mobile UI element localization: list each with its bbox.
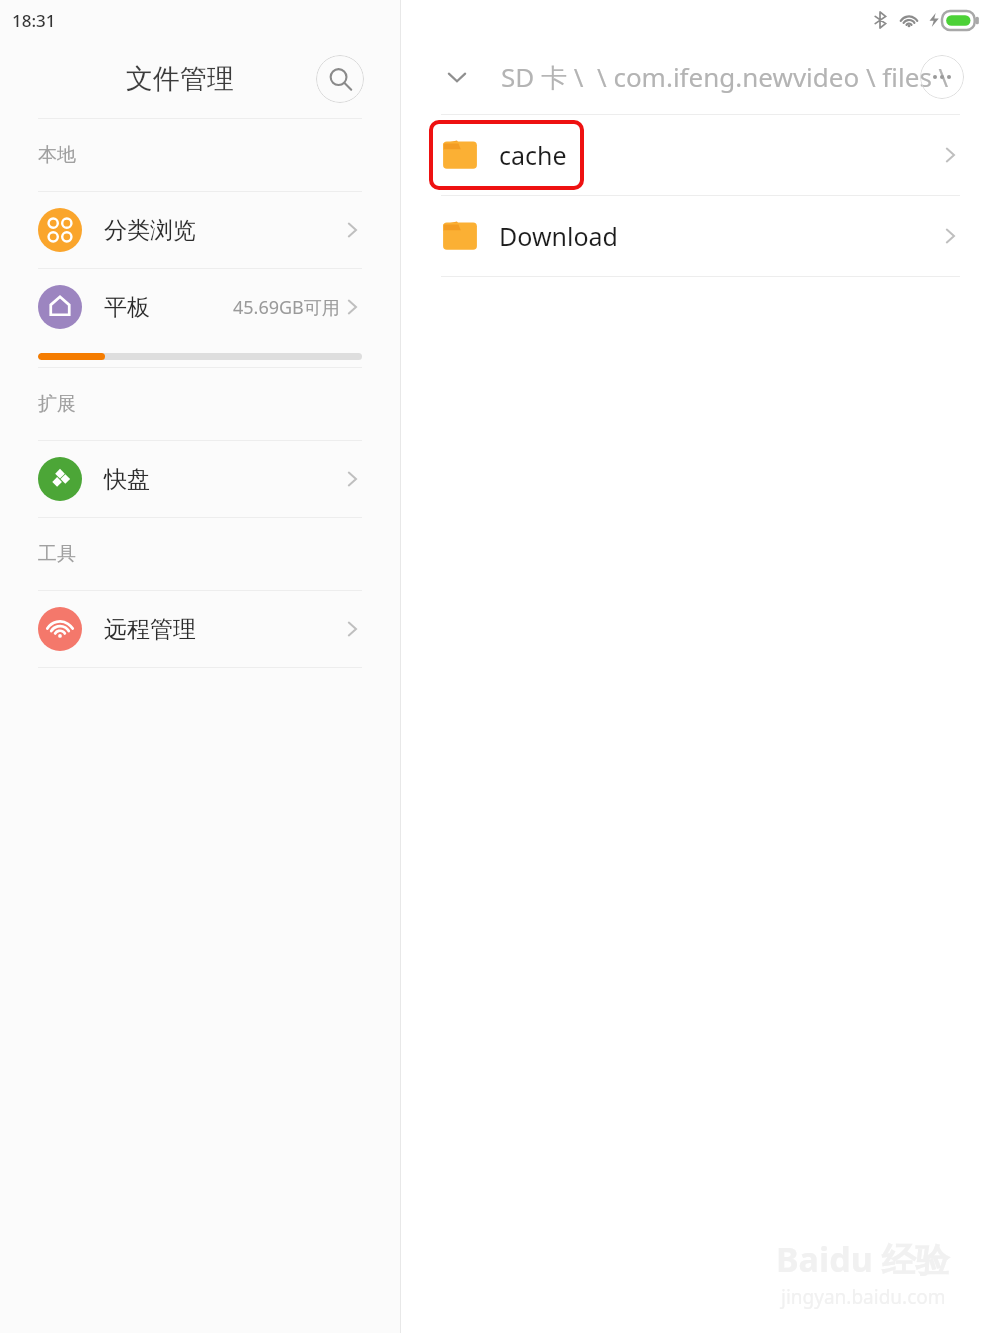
staticText: cache <box>499 138 567 172</box>
staticText: 18:31 <box>12 9 56 32</box>
button[interactable]: 平板 <box>0 269 400 345</box>
button[interactable]: cache <box>401 115 1000 195</box>
button[interactable]: 快盘 <box>0 441 400 517</box>
button[interactable]: Collapse path <box>437 57 477 97</box>
staticText: 分类浏览 <box>104 216 196 245</box>
button[interactable]: 分类浏览 <box>0 192 400 268</box>
staticText: jingyan.baidu.com <box>781 1284 946 1310</box>
staticText: 本地 <box>38 143 76 167</box>
staticText: 45.69GB可用 <box>233 295 340 320</box>
button[interactable]: Download <box>401 196 1000 276</box>
button[interactable]: More options <box>920 55 964 99</box>
staticText: Baidu 经验 <box>776 1236 950 1282</box>
staticText: 平板 <box>104 293 150 322</box>
staticText: 快盘 <box>104 465 150 494</box>
staticText: 远程管理 <box>104 615 196 644</box>
staticText: 工具 <box>38 542 76 566</box>
staticText: 文件管理 <box>126 62 234 96</box>
button[interactable]: Search <box>316 55 364 103</box>
button[interactable]: 远程管理 <box>0 591 400 667</box>
staticText: 扩展 <box>38 392 76 416</box>
staticText: Download <box>499 219 618 253</box>
staticText: SD 卡 \ \ com.ifeng.newvideo \ files \ <box>501 59 949 95</box>
